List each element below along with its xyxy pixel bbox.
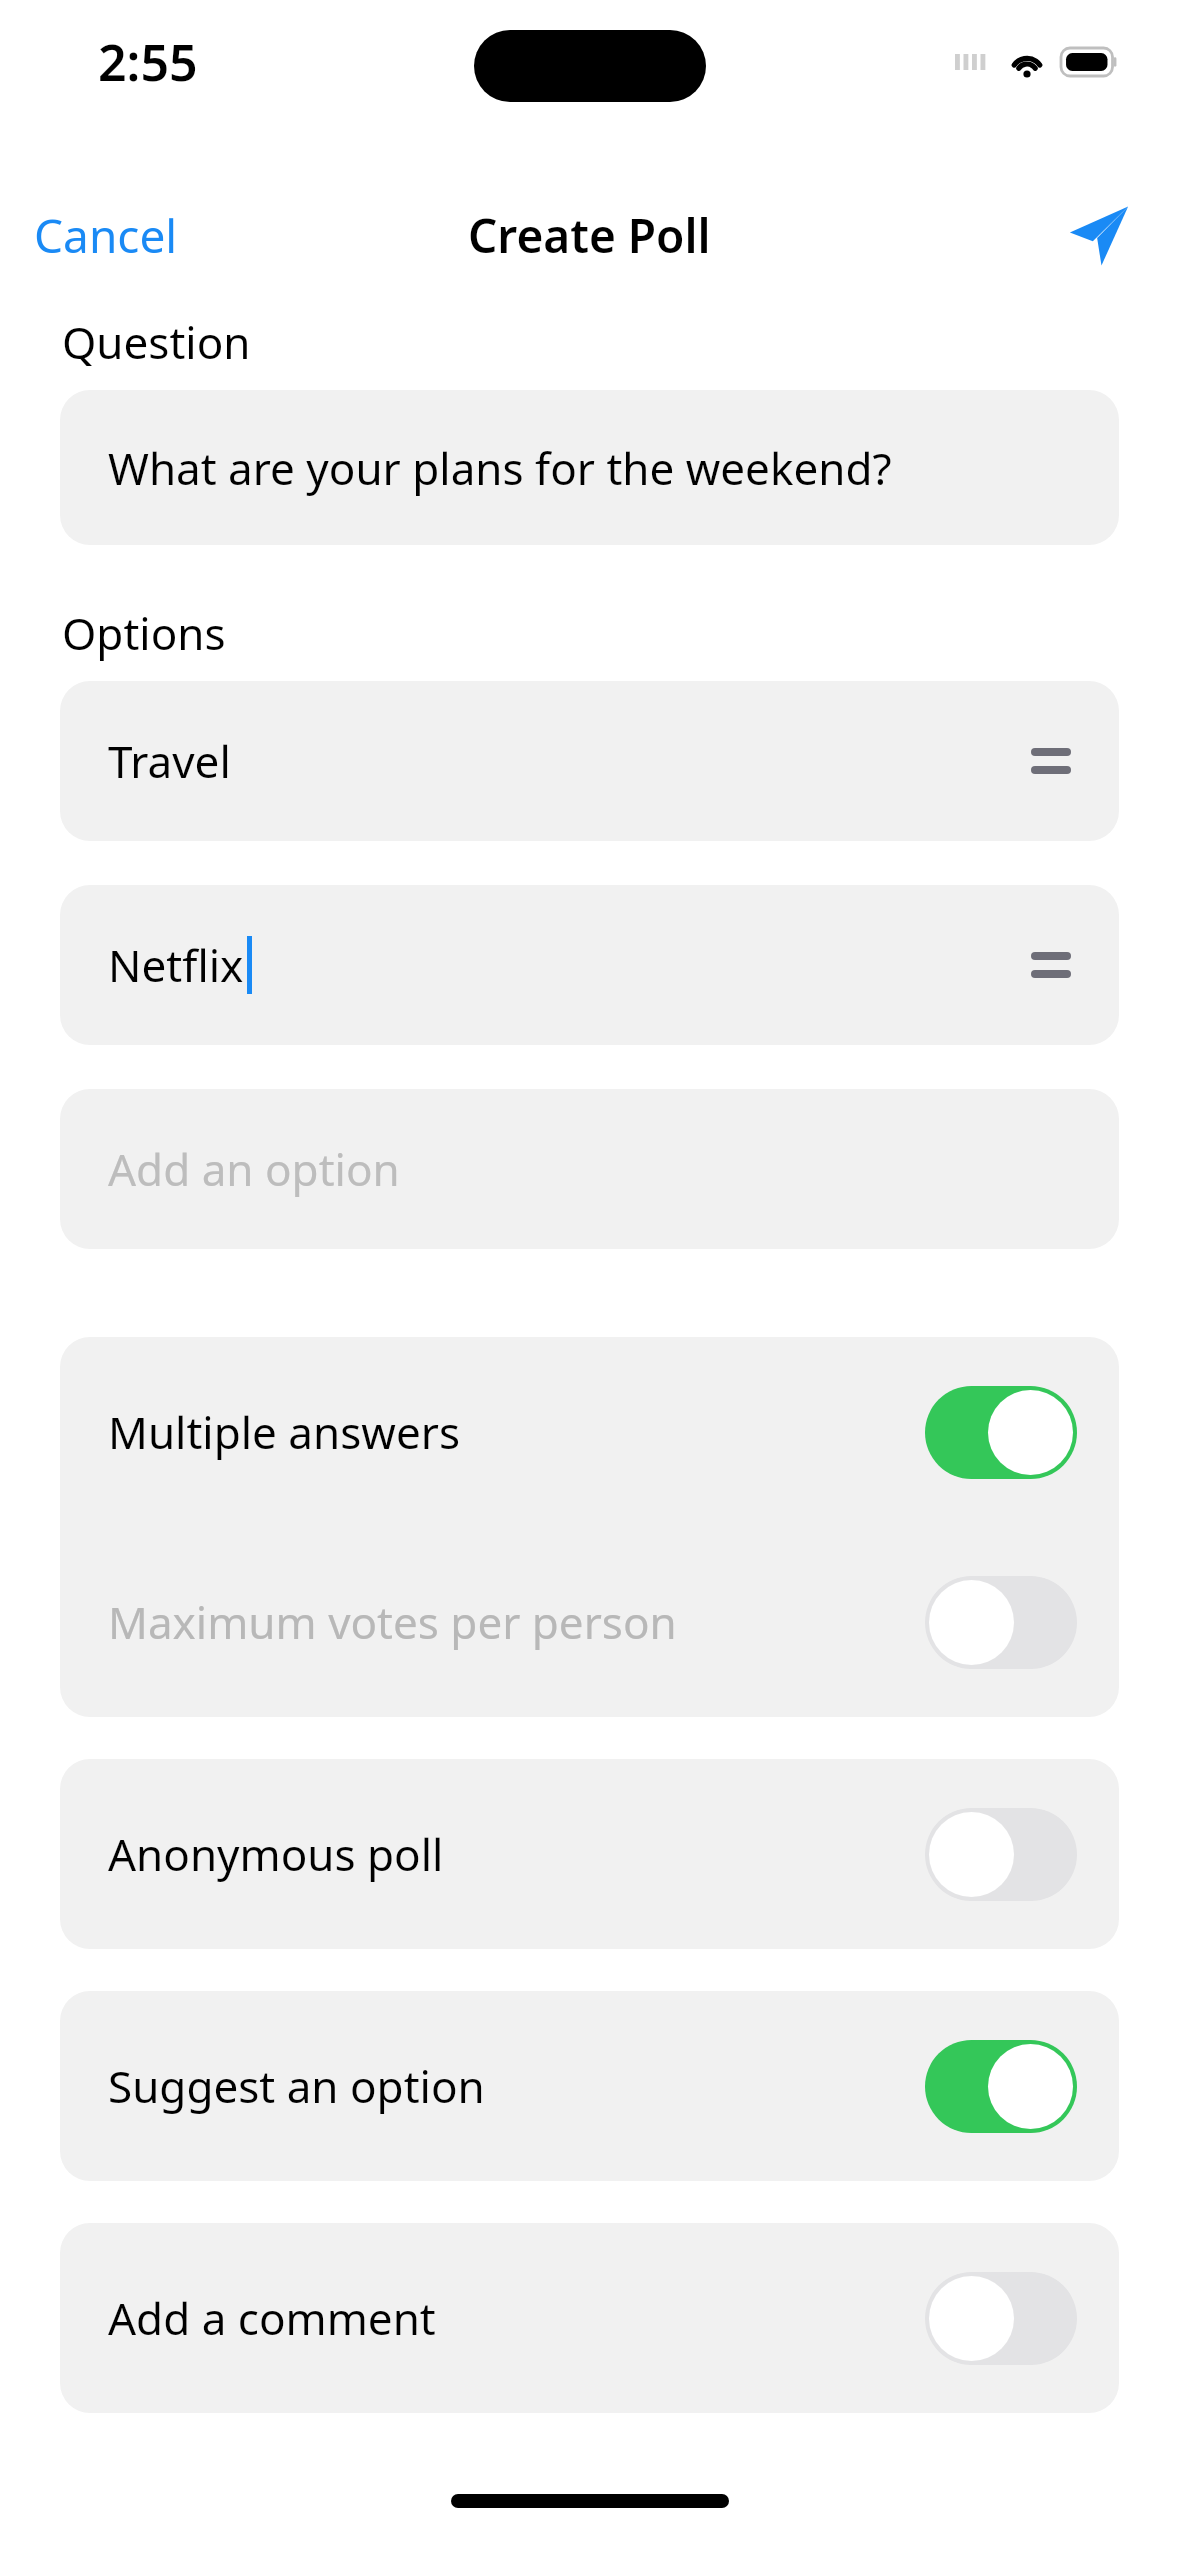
staticText: 2:55 xyxy=(98,28,198,96)
button[interactable]: Suggest an option xyxy=(60,1991,1119,2181)
button[interactable]: Add an option xyxy=(60,1089,1119,1249)
staticText: Add an option xyxy=(108,1139,400,1199)
button[interactable]: Add a comment xyxy=(60,2223,1119,2413)
staticText: Create Poll xyxy=(468,204,711,267)
staticText: Multiple answers xyxy=(108,1402,925,1462)
staticText: Anonymous poll xyxy=(108,1824,925,1884)
staticText: Options xyxy=(62,603,226,663)
other: Reorder xyxy=(1031,746,1071,776)
staticText: What are your plans for the weekend? xyxy=(108,438,892,498)
button[interactable]: Cancel xyxy=(0,184,212,287)
staticText: Add a comment xyxy=(108,2288,925,2348)
button[interactable]: What are your plans for the weekend? xyxy=(60,390,1119,545)
other: Reorder xyxy=(1031,950,1071,980)
button[interactable]: Travel xyxy=(60,681,1119,841)
staticText: Netflix xyxy=(108,935,244,995)
button[interactable]: Multiple answers xyxy=(60,1337,1119,1527)
button[interactable]: Netflix xyxy=(60,885,1119,1045)
button[interactable]: Maximum votes per person xyxy=(60,1527,1119,1717)
button[interactable]: Send poll xyxy=(1059,195,1139,275)
staticText: Maximum votes per person xyxy=(108,1592,925,1652)
staticText: Suggest an option xyxy=(108,2056,925,2116)
staticText: Travel xyxy=(108,731,231,791)
staticText: Question xyxy=(62,312,251,372)
button[interactable]: Anonymous poll xyxy=(60,1759,1119,1949)
staticText: Cancel xyxy=(34,204,178,267)
